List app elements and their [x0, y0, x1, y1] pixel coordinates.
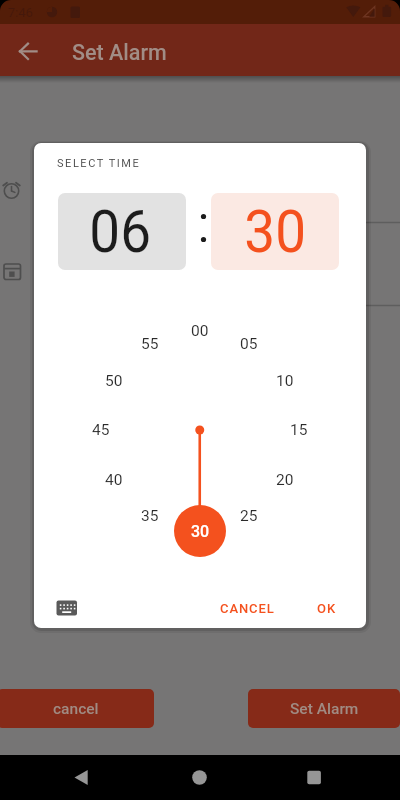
staticText: 20: [276, 471, 294, 489]
staticText: CANCEL: [220, 601, 275, 616]
staticText: 05: [240, 335, 258, 353]
button[interactable]: 06: [58, 193, 186, 270]
staticText: Set Alarm: [290, 700, 359, 718]
button[interactable]: [46, 590, 90, 626]
button[interactable]: Set Alarm: [248, 689, 400, 728]
button[interactable]: 30: [174, 505, 226, 557]
staticText: 35: [141, 507, 159, 525]
button[interactable]: 55: [134, 334, 166, 354]
button[interactable]: 45: [85, 420, 117, 440]
staticText: 06: [89, 197, 152, 266]
button[interactable]: 25: [233, 506, 265, 526]
staticText: SELECT TIME: [57, 157, 141, 170]
button[interactable]: [8, 33, 44, 69]
staticText: Set Alarm: [72, 40, 167, 65]
staticText: 30: [244, 197, 307, 266]
button[interactable]: [294, 757, 334, 797]
staticText: 00: [191, 322, 209, 340]
button[interactable]: 40: [98, 470, 130, 490]
button[interactable]: cancel: [0, 689, 154, 728]
staticText: 45: [92, 421, 110, 439]
button[interactable]: CANCEL: [208, 593, 286, 623]
button[interactable]: 35: [134, 506, 166, 526]
button[interactable]: 05: [233, 334, 265, 354]
button[interactable]: 00: [184, 321, 216, 341]
button[interactable]: 50: [98, 371, 130, 391]
button[interactable]: [61, 757, 101, 797]
staticText: cancel: [53, 700, 99, 718]
staticText: 40: [105, 471, 123, 489]
staticText: 55: [141, 335, 159, 353]
staticText: 30: [191, 522, 210, 541]
staticText: OK: [317, 601, 336, 616]
button[interactable]: 30: [211, 193, 339, 270]
button[interactable]: OK: [309, 593, 343, 623]
button[interactable]: 10: [269, 371, 301, 391]
button[interactable]: 20: [269, 470, 301, 490]
staticText: 10: [276, 372, 294, 390]
button[interactable]: 15: [283, 420, 315, 440]
staticText: 25: [240, 507, 258, 525]
button[interactable]: [179, 757, 219, 797]
staticText: 50: [105, 372, 123, 390]
staticText: 7:46: [8, 5, 34, 20]
staticText: 15: [290, 421, 308, 439]
